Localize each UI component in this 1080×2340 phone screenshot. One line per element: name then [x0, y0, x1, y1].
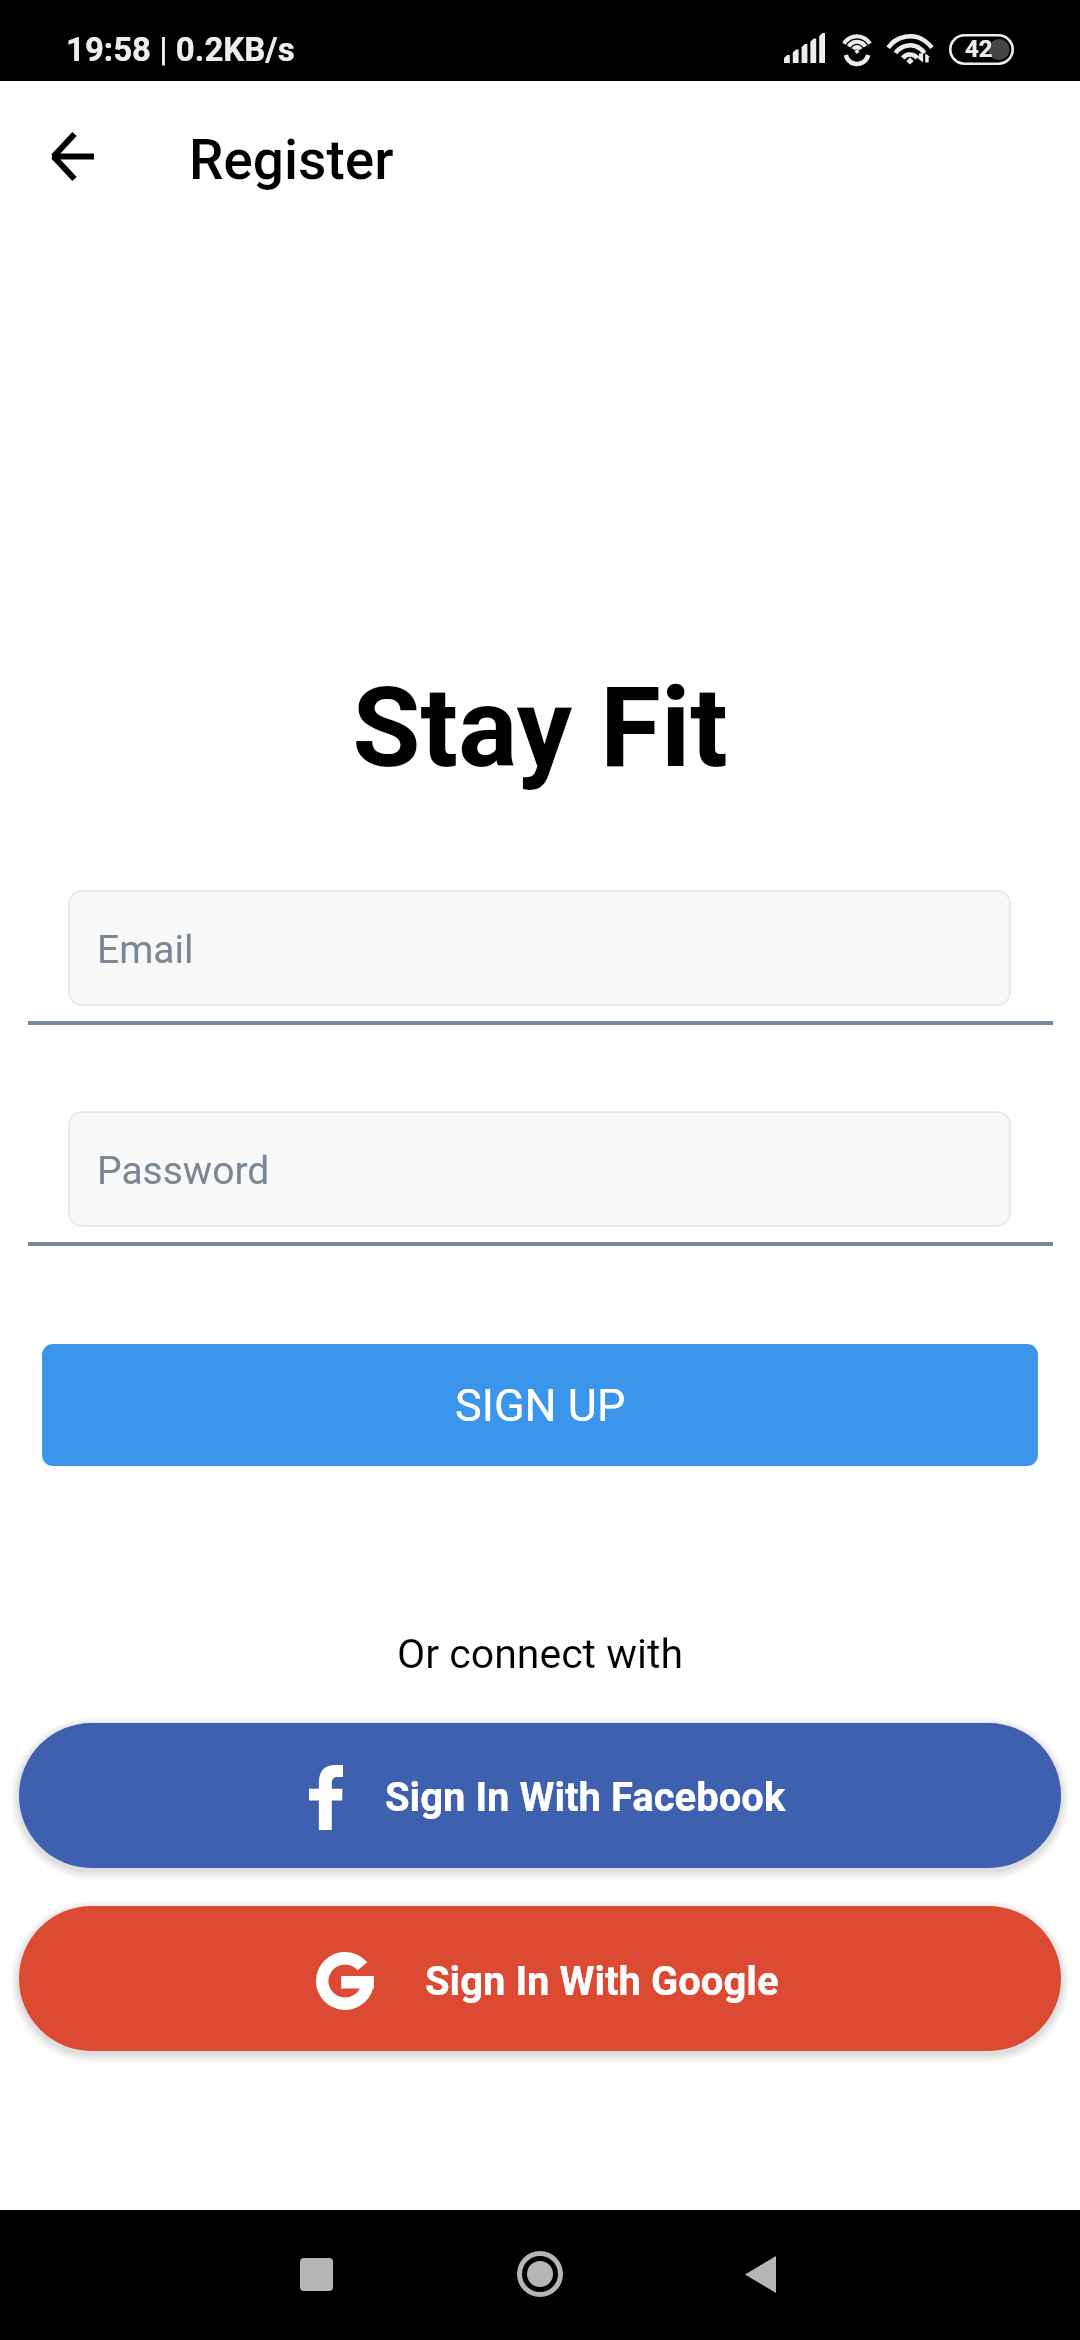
button[interactable]: Sign In With Google — [19, 1906, 1061, 2051]
button[interactable]: Email — [68, 890, 1011, 1006]
button[interactable]: Back — [11, 96, 131, 216]
button[interactable]: Password — [68, 1111, 1011, 1227]
button[interactable]: Recent apps — [230, 2210, 402, 2340]
button[interactable]: Back — [674, 2210, 846, 2340]
staticText: Sign In With Facebook — [385, 1774, 786, 1821]
button[interactable]: SIGN UP — [42, 1344, 1038, 1466]
button[interactable]: Sign In With Facebook — [19, 1723, 1061, 1868]
staticText: 19:58 | 0.2KB/s — [66, 30, 295, 69]
staticText: Password — [97, 1148, 270, 1194]
staticText: SIGN UP — [455, 1379, 626, 1432]
staticText: Email — [97, 927, 194, 973]
staticText: Register — [189, 128, 394, 192]
staticText: Or connect with — [0, 1630, 1080, 1678]
staticText: Sign In With Google — [425, 1958, 779, 2005]
staticText: 42 — [965, 35, 993, 63]
staticText: Stay Fit — [0, 663, 1080, 793]
button[interactable]: Home — [454, 2210, 626, 2340]
